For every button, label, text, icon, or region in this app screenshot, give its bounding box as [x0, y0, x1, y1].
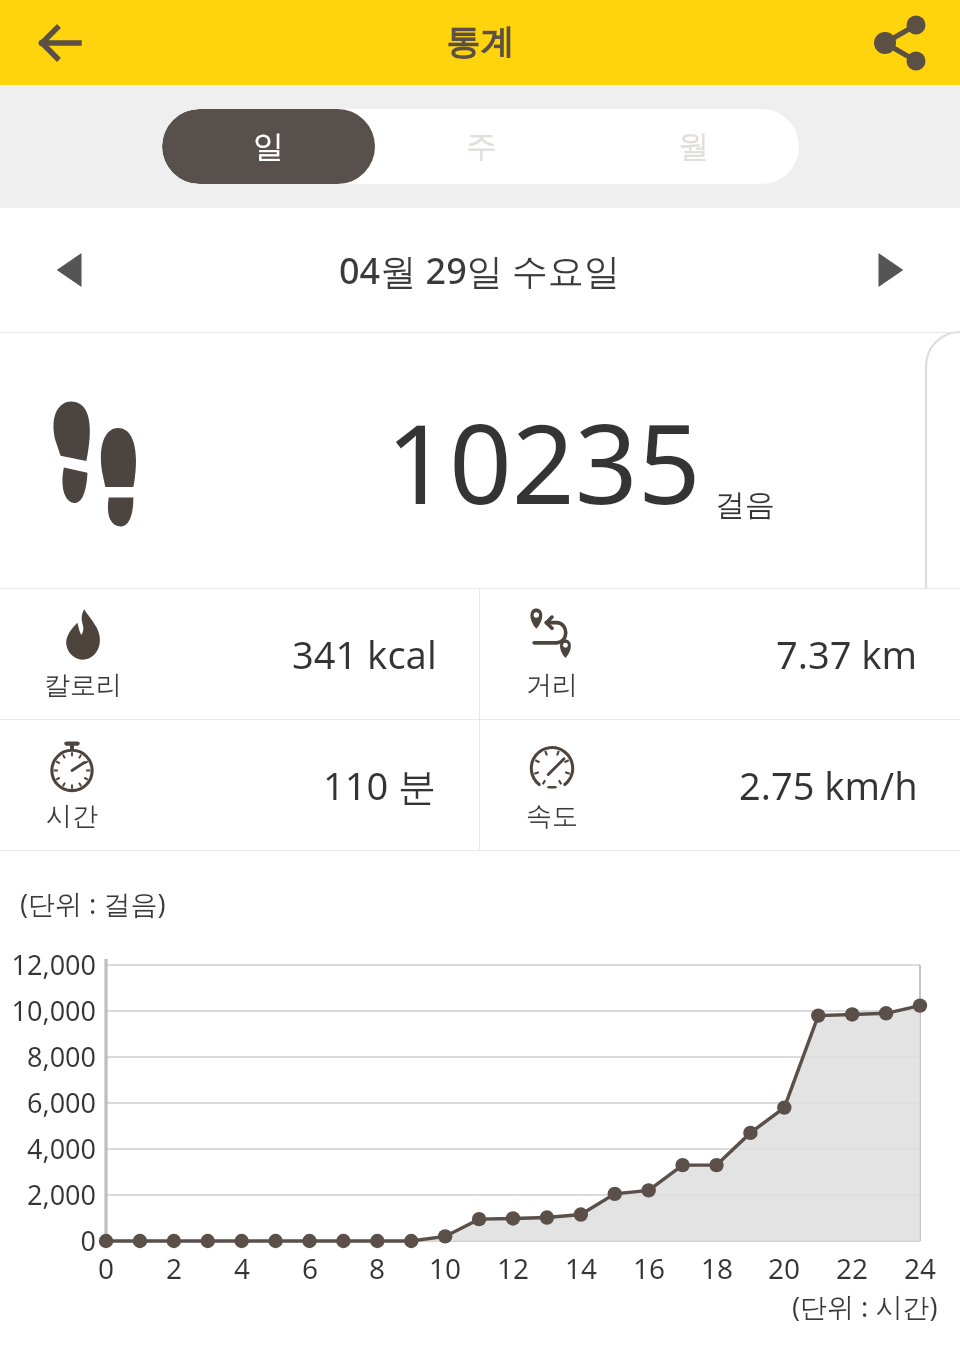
staticText: 2.75 km/h — [739, 759, 918, 811]
button[interactable]: 속도 — [480, 720, 960, 850]
button[interactable]: 시간 — [0, 720, 479, 850]
button[interactable]: Previous day — [40, 238, 104, 302]
staticText: 칼로리 — [44, 669, 122, 702]
staticText: 2 — [144, 1249, 204, 1287]
button[interactable]: 칼로리 — [0, 589, 479, 719]
staticText: 110 분 — [323, 759, 437, 811]
staticText: 6 — [280, 1249, 340, 1287]
staticText: 10,000 — [8, 992, 96, 1029]
staticText: 12,000 — [8, 946, 96, 983]
staticText: 속도 — [526, 800, 578, 833]
staticText: 0 — [76, 1249, 136, 1287]
staticText: 4,000 — [8, 1130, 96, 1167]
staticText: 16 — [619, 1249, 679, 1287]
staticText: 6,000 — [8, 1084, 96, 1121]
staticText: 10235 — [386, 386, 701, 536]
staticText: 22 — [822, 1249, 882, 1287]
staticText: 일 — [253, 127, 284, 166]
staticText: (단위 : 걸음) — [20, 885, 166, 922]
staticText: 0 — [8, 1222, 96, 1259]
staticText: 14 — [551, 1249, 611, 1287]
button[interactable]: 월 — [587, 109, 799, 184]
staticText: 시간 — [46, 800, 98, 833]
button[interactable]: 일 — [162, 109, 375, 184]
staticText: 7.37 km — [776, 628, 918, 680]
button[interactable]: Share — [866, 8, 936, 78]
button[interactable]: 10235 — [0, 333, 960, 588]
staticText: (단위 : 시간) — [792, 1288, 938, 1325]
staticText: 04월 29일 수요일 — [339, 246, 621, 295]
staticText: 12 — [483, 1249, 543, 1287]
staticText: 18 — [687, 1249, 747, 1287]
button[interactable]: Next day — [856, 238, 920, 302]
staticText: 2,000 — [8, 1176, 96, 1213]
staticText: 10 — [415, 1249, 475, 1287]
staticText: 24 — [890, 1249, 950, 1287]
staticText: 거리 — [526, 669, 578, 702]
staticText: 월 — [678, 127, 709, 166]
button[interactable]: 주 — [375, 109, 587, 184]
button[interactable]: Back — [22, 5, 98, 81]
staticText: 341 kcal — [292, 628, 437, 680]
staticText: 20 — [754, 1249, 814, 1287]
staticText: 8,000 — [8, 1038, 96, 1075]
staticText: 걸음 — [715, 486, 775, 524]
staticText: 주 — [466, 127, 497, 166]
staticText: 8 — [347, 1249, 407, 1287]
button[interactable]: 거리 — [480, 589, 960, 719]
staticText: 4 — [212, 1249, 272, 1287]
staticText: 통계 — [446, 21, 514, 64]
